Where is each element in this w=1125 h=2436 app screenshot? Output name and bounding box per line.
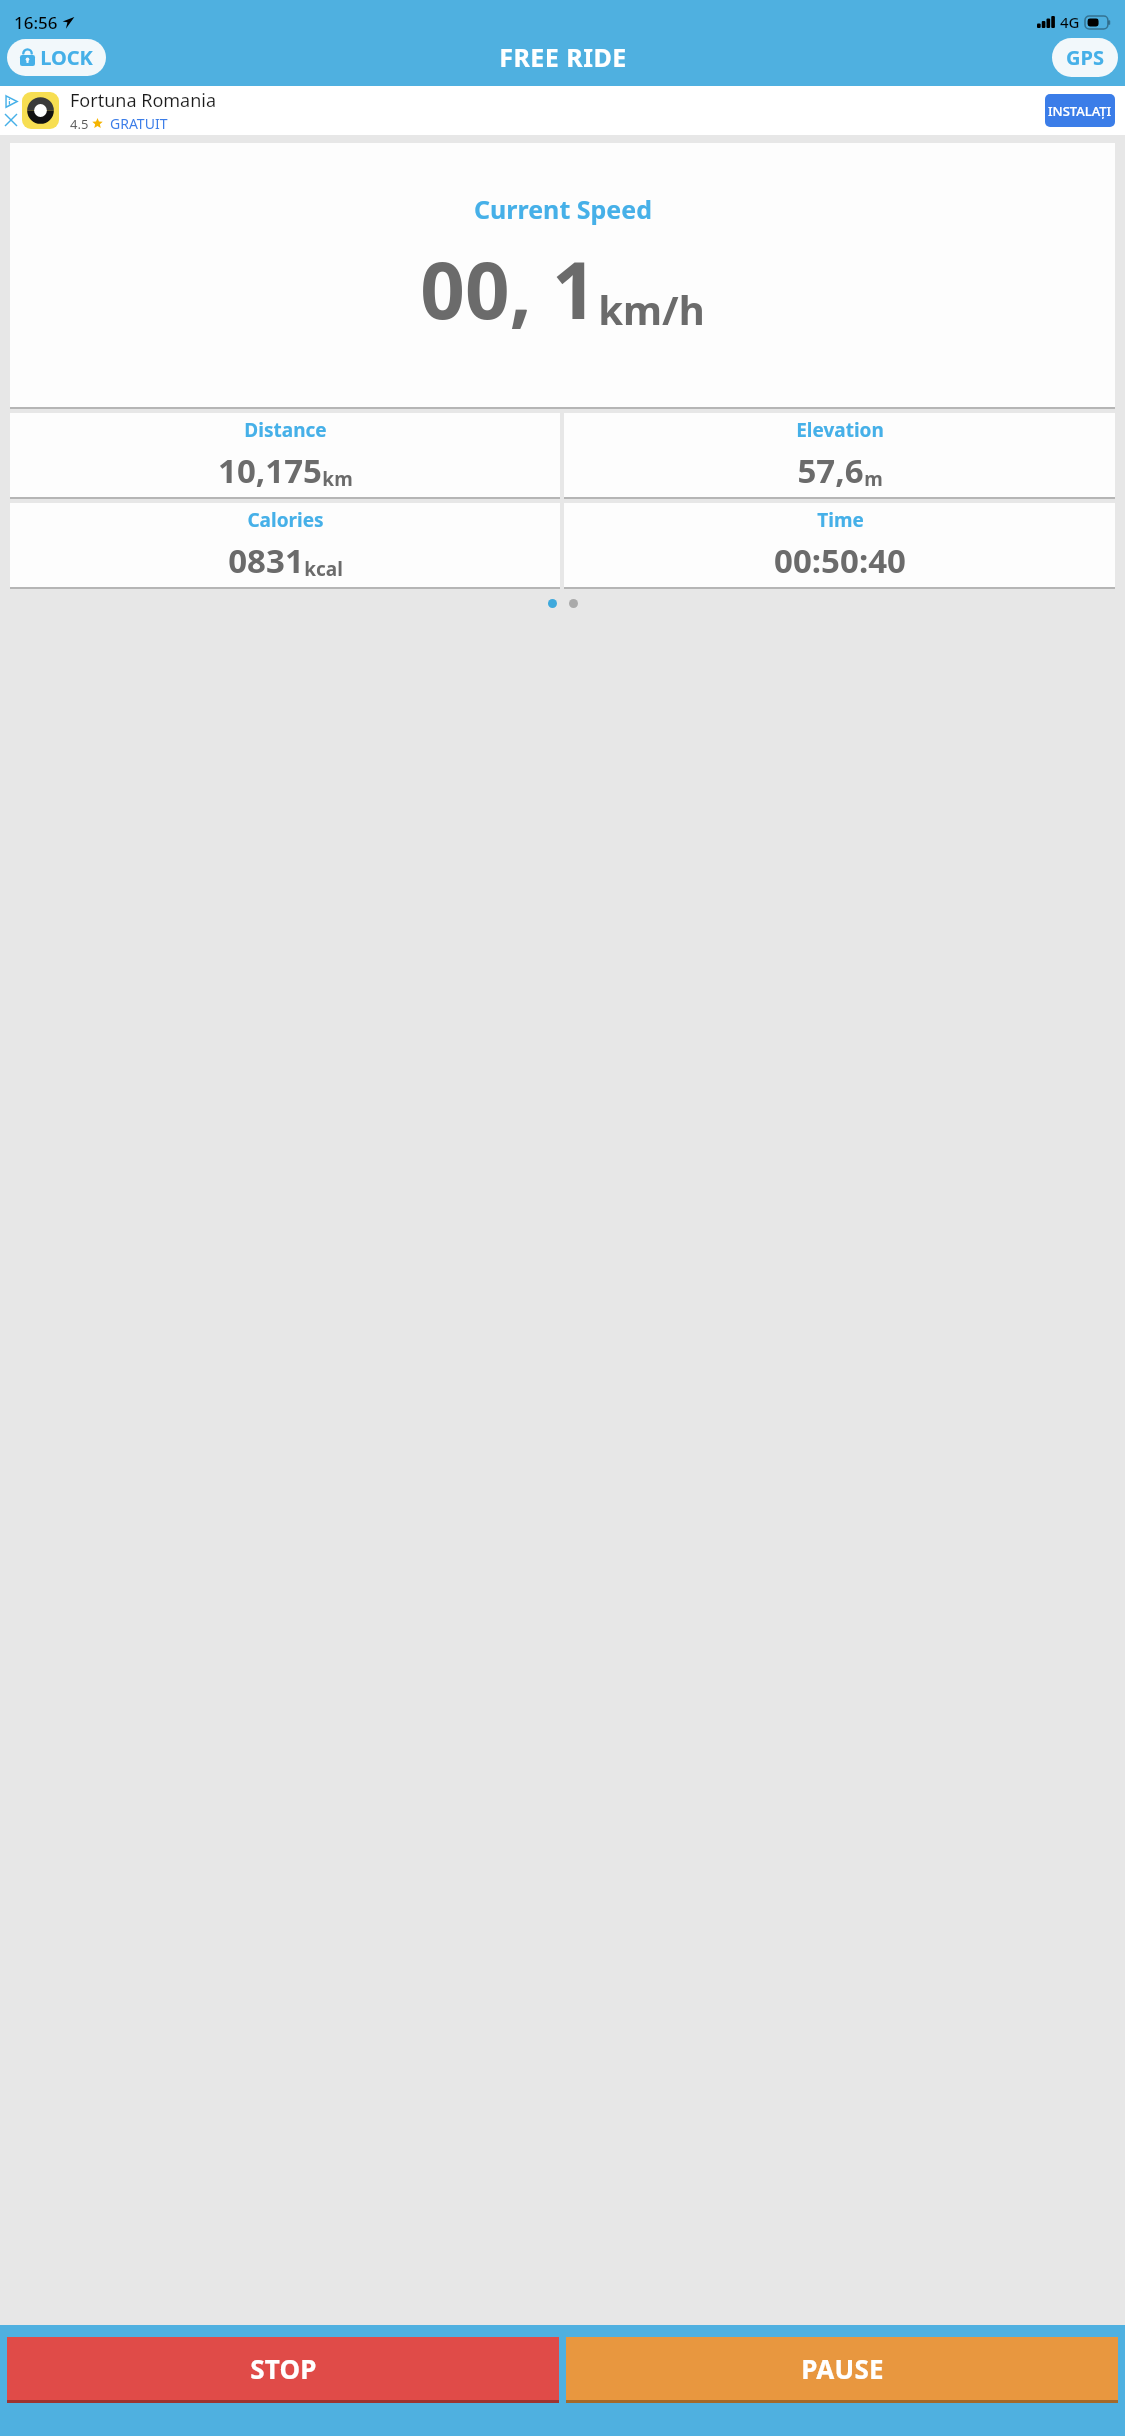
staticText: Calories <box>247 507 324 533</box>
button[interactable]: Page 2 <box>569 599 578 608</box>
staticText: GRATUIT <box>110 114 168 133</box>
staticText: GPS <box>1066 44 1104 71</box>
staticText: 57,6 <box>797 448 864 493</box>
staticText: Time <box>817 507 864 533</box>
staticText: Fortuna Romania <box>70 88 217 113</box>
staticText: 00:50:40 <box>774 538 906 583</box>
button[interactable]: PAUSE <box>566 2337 1118 2403</box>
staticText: 10,175 <box>218 448 322 493</box>
staticText: 00, 1 <box>420 236 597 342</box>
button[interactable]: Distance <box>10 413 560 497</box>
staticText: km <box>322 466 353 492</box>
button[interactable]: Time <box>564 503 1115 587</box>
staticText: LOCK <box>40 44 93 71</box>
staticText: 4.5 <box>70 115 89 133</box>
button[interactable]: INSTALAȚI <box>1045 94 1115 127</box>
staticText: INSTALAȚI <box>1048 102 1112 120</box>
staticText: STOP <box>250 2351 317 2386</box>
button[interactable]: STOP <box>7 2337 559 2403</box>
staticText: m <box>864 466 883 492</box>
staticText: kcal <box>304 556 343 582</box>
staticText: 4G <box>1060 12 1080 32</box>
button[interactable]: GPS status <box>1052 38 1118 77</box>
button[interactable]: Elevation <box>564 413 1115 497</box>
button[interactable]: Page 1 <box>548 599 557 608</box>
staticText: Current Speed <box>474 192 652 226</box>
staticText: km/h <box>598 282 705 336</box>
staticText: 0831 <box>228 538 304 583</box>
button[interactable]: LOCK <box>7 39 106 76</box>
staticText: PAUSE <box>801 2351 884 2386</box>
button[interactable]: Calories <box>10 503 560 587</box>
button[interactable]: Fortuna Romania <box>0 86 1125 135</box>
staticText: FREE RIDE <box>499 40 627 74</box>
staticText: Elevation <box>796 417 884 443</box>
staticText: Distance <box>244 417 327 443</box>
button[interactable]: Current Speed <box>10 143 1115 407</box>
staticText: 16:56 <box>14 11 58 34</box>
